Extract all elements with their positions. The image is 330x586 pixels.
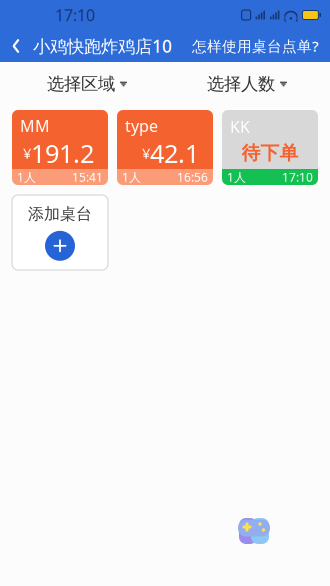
- staticText: 待下单: [241, 142, 298, 165]
- staticText: 选择人数: [207, 73, 275, 95]
- staticText: 1人: [122, 169, 141, 185]
- button[interactable]: MM: [12, 110, 108, 185]
- staticText: 17:10: [282, 169, 313, 185]
- button[interactable]: KK: [222, 110, 318, 185]
- button[interactable]: 返回: [0, 30, 33, 62]
- button[interactable]: type: [117, 110, 213, 185]
- staticText: KK: [230, 116, 250, 137]
- staticText: 小鸡快跑炸鸡店10: [33, 34, 172, 57]
- staticText: 选择区域: [47, 73, 115, 95]
- staticText: 1人: [227, 169, 246, 185]
- staticText: ¥: [142, 143, 150, 163]
- button[interactable]: 游戏: [235, 512, 273, 550]
- button[interactable]: 添加桌台: [12, 195, 108, 270]
- button[interactable]: 选择人数: [207, 65, 287, 103]
- staticText: MM: [20, 115, 50, 136]
- staticText: type: [125, 115, 158, 136]
- staticText: 42.1: [150, 136, 199, 170]
- staticText: 怎样使用桌台点单?: [192, 36, 319, 56]
- staticText: 添加桌台: [28, 204, 92, 224]
- button[interactable]: 选择区域: [47, 65, 127, 103]
- staticText: 17:10: [55, 4, 95, 26]
- button[interactable]: 怎样使用桌台点单?: [186, 30, 325, 62]
- staticText: 16:56: [177, 169, 208, 185]
- staticText: ¥: [23, 143, 31, 163]
- staticText: 191.2: [31, 136, 94, 170]
- staticText: 15:41: [72, 169, 103, 185]
- staticText: 1人: [17, 169, 36, 185]
